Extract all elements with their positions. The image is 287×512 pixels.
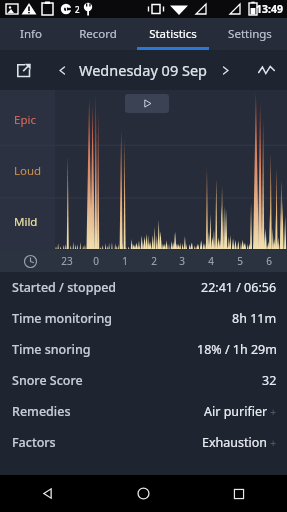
button[interactable]: Export — [10, 57, 36, 83]
button[interactable]: Recent apps — [191, 475, 287, 512]
staticText: Loud — [14, 163, 42, 179]
button[interactable]: Previous day — [51, 59, 73, 81]
staticText: Snore Score — [12, 372, 83, 389]
staticText: 2 — [75, 4, 80, 15]
staticText: 13:49 — [256, 2, 283, 16]
button[interactable]: Play — [125, 94, 169, 113]
staticText: 4 — [205, 254, 217, 268]
button[interactable]: Statistics — [134, 18, 212, 50]
staticText: 5 — [234, 254, 246, 268]
button[interactable]: Record — [62, 18, 134, 50]
staticText: 3 — [176, 254, 188, 268]
staticText: Remedies — [12, 403, 71, 420]
staticText: 2 — [148, 254, 160, 268]
staticText: Started / stopped — [12, 279, 117, 296]
staticText: Info — [20, 26, 42, 42]
button[interactable]: Info — [0, 18, 62, 50]
button[interactable]: Factors — [0, 427, 287, 458]
staticText: Time snoring — [12, 341, 91, 358]
staticText: 23 — [61, 254, 73, 268]
button[interactable]: Next day — [214, 59, 236, 81]
staticText: Exhaustion — [202, 434, 268, 451]
staticText: Statistics — [149, 26, 197, 42]
staticText: Factors — [12, 434, 56, 451]
staticText: Time monitoring — [12, 310, 113, 327]
staticText: Mild — [14, 214, 38, 230]
staticText: Wednesday 09 Sep — [79, 60, 208, 80]
staticText: + — [270, 404, 277, 419]
staticText: 32 — [262, 372, 277, 389]
staticText: + — [270, 435, 277, 450]
button[interactable]: Remedies — [0, 396, 287, 427]
staticText: 22:41 / 06:56 — [201, 279, 277, 296]
staticText: 1 — [119, 254, 131, 268]
button[interactable]: Settings — [212, 18, 287, 50]
staticText: Air purifier — [204, 403, 268, 420]
button[interactable]: Home — [95, 475, 191, 512]
staticText: 0 — [90, 254, 102, 268]
button[interactable]: Snore Score — [0, 365, 287, 396]
staticText: Epic — [14, 112, 36, 128]
button[interactable]: Time snoring — [0, 334, 287, 365]
staticText: Record — [79, 26, 117, 42]
button[interactable]: Started / stopped — [0, 272, 287, 303]
staticText: 8h 11m — [232, 310, 277, 327]
staticText: 18% / 1h 29m — [197, 341, 277, 358]
staticText: Settings — [228, 26, 272, 42]
staticText: 1 — [64, 4, 69, 15]
other: Time axis — [22, 253, 38, 269]
staticText: 6 — [263, 254, 275, 268]
button[interactable]: Trends — [253, 57, 279, 83]
button[interactable]: Time monitoring — [0, 303, 287, 334]
button[interactable]: Back — [0, 475, 95, 512]
